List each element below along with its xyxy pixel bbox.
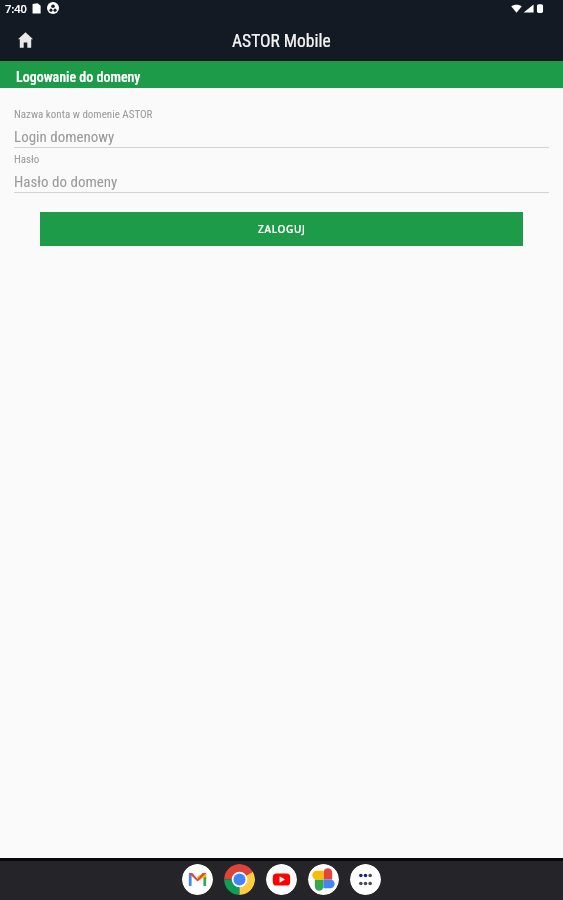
button[interactable]: Gmail — [182, 864, 213, 895]
button[interactable]: Chrome — [224, 864, 255, 895]
staticText: Login domenowy — [14, 128, 115, 146]
staticText: Logowanie do domeny — [16, 69, 141, 85]
button[interactable]: ZALOGUJ — [40, 212, 523, 246]
button[interactable]: YouTube — [266, 864, 297, 895]
staticText: 7:40 — [5, 1, 27, 16]
staticText: Hasło — [14, 153, 40, 166]
button[interactable]: Photos — [308, 864, 339, 895]
button[interactable]: Home — [8, 24, 42, 60]
button[interactable]: All apps — [350, 864, 381, 895]
staticText: ZALOGUJ — [258, 222, 306, 236]
staticText: Nazwa konta w domenie ASTOR — [14, 108, 153, 121]
staticText: Hasło do domeny — [14, 173, 118, 191]
staticText: ASTOR Mobile — [232, 31, 331, 52]
